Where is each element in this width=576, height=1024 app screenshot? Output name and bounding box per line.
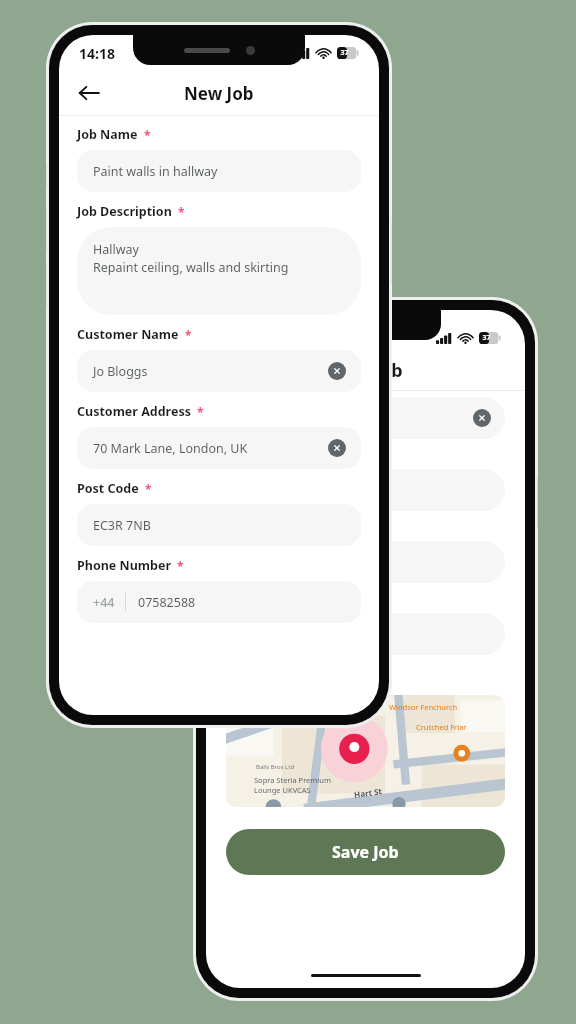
staticText: Customer Address bbox=[77, 403, 191, 420]
button[interactable] bbox=[226, 541, 505, 583]
button[interactable]: 70 Mark Lane, London, UK bbox=[77, 427, 361, 469]
button[interactable]: Hallway Repaint ceiling, walls and skirt… bbox=[77, 227, 361, 315]
staticText: * bbox=[144, 127, 151, 143]
staticText: 37 bbox=[340, 48, 349, 58]
staticText: Sopra Steria Premium Lounge UKVCAS bbox=[254, 775, 331, 795]
button[interactable]: Back bbox=[71, 75, 107, 111]
button[interactable]: Clear bbox=[327, 438, 347, 458]
button[interactable] bbox=[226, 469, 505, 511]
staticText: Balls Bros Ltd bbox=[256, 763, 295, 771]
staticText: Job Name bbox=[77, 126, 138, 143]
staticText: 37 bbox=[482, 333, 491, 343]
button[interactable]: Google Map bbox=[226, 695, 505, 807]
staticText: * bbox=[178, 204, 185, 220]
button[interactable]: Paint walls in hallway bbox=[77, 150, 361, 192]
button[interactable]: n bbox=[226, 613, 505, 655]
staticText: Jo Bloggs bbox=[93, 363, 148, 380]
staticText: Phone Number bbox=[77, 557, 171, 574]
staticText: 07582588 bbox=[138, 594, 196, 611]
button[interactable]: +44 bbox=[77, 581, 361, 623]
staticText: * bbox=[177, 558, 184, 574]
staticText: Save Job bbox=[332, 841, 399, 863]
button[interactable]: Save Job bbox=[226, 829, 505, 875]
staticText: +44 bbox=[93, 594, 115, 611]
staticText: Windsor Fenchurch bbox=[389, 702, 458, 712]
staticText: Customer Name bbox=[77, 326, 179, 343]
staticText: * bbox=[185, 327, 192, 343]
staticText: 14:18 bbox=[79, 44, 115, 63]
staticText: New Job bbox=[329, 358, 403, 383]
staticText: Post Code bbox=[77, 480, 139, 497]
staticText: Dunster Ct bbox=[245, 707, 290, 726]
staticText: EC3R 7NB bbox=[93, 517, 151, 534]
staticText: * bbox=[197, 404, 204, 420]
staticText: 70 Mark Lane, London, UK bbox=[93, 440, 248, 457]
staticText: Job Description bbox=[77, 203, 172, 220]
staticText: Hart St bbox=[353, 785, 383, 800]
button[interactable]: Jo Bloggs bbox=[77, 350, 361, 392]
staticText: New Job bbox=[184, 82, 254, 105]
button[interactable]: Clear bbox=[327, 361, 347, 381]
button[interactable] bbox=[226, 397, 505, 439]
staticText: Paint walls in hallway bbox=[93, 163, 218, 180]
staticText: * bbox=[145, 481, 152, 497]
staticText: Crutched Friar bbox=[416, 722, 467, 732]
staticText: Hallway Repaint ceiling, walls and skirt… bbox=[93, 241, 289, 276]
button[interactable]: EC3R 7NB bbox=[77, 504, 361, 546]
